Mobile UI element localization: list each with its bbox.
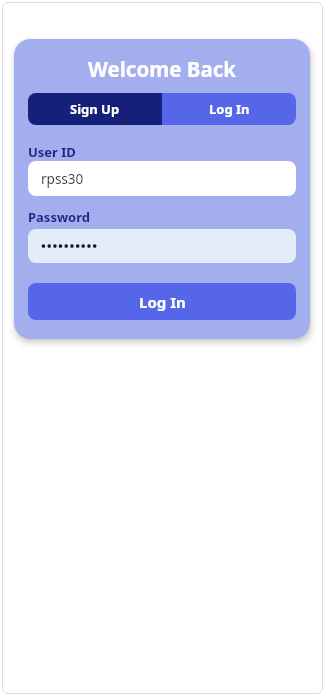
staticText: User ID	[28, 143, 76, 161]
button[interactable]: Log In	[28, 283, 296, 320]
staticText: Sign Up	[70, 100, 120, 118]
staticText: Log In	[209, 100, 250, 118]
button[interactable]: ••••••••••	[28, 229, 296, 263]
staticText: ••••••••••	[41, 237, 98, 255]
staticText: Welcome Back	[28, 55, 296, 83]
button[interactable]: Log In	[162, 93, 296, 125]
button[interactable]: Sign Up	[28, 93, 162, 125]
staticText: Log In	[139, 292, 186, 312]
staticText: Password	[28, 208, 90, 226]
button[interactable]: rpss30	[28, 161, 296, 196]
staticText: rpss30	[41, 170, 84, 188]
